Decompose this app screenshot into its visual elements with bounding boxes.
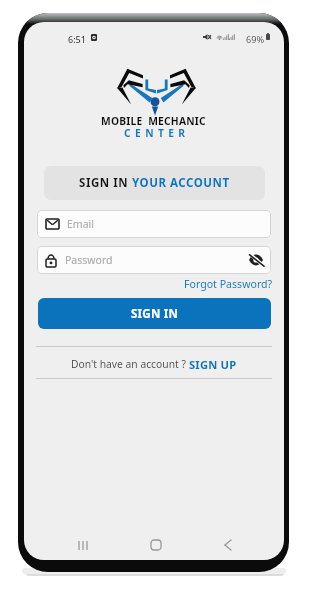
staticText: C E N T E R xyxy=(124,126,186,140)
staticText: Password xyxy=(65,253,113,267)
staticText: YOUR ACCOUNT xyxy=(132,175,230,191)
button[interactable]: Forgot Password? xyxy=(177,276,273,291)
staticText: SIGN IN xyxy=(79,175,132,191)
button[interactable]: Email xyxy=(37,210,271,238)
staticText: MOBILE MECHANIC xyxy=(101,114,206,128)
button[interactable]: Password xyxy=(37,246,271,274)
button[interactable]: Home xyxy=(142,532,170,558)
staticText: SIGN IN xyxy=(131,306,179,322)
button[interactable]: Back xyxy=(214,532,242,558)
staticText: Forgot Password? xyxy=(184,277,273,291)
staticText: 6:51 xyxy=(68,33,86,45)
staticText: SIGN UP xyxy=(189,357,237,372)
button[interactable]: SIGN IN xyxy=(38,298,271,329)
button[interactable]: Show password xyxy=(248,252,264,268)
staticText: Email xyxy=(67,217,94,231)
staticText: 69% xyxy=(246,33,265,46)
button[interactable]: SIGN IN xyxy=(44,166,265,200)
button[interactable]: SIGN UP xyxy=(189,357,237,372)
staticText: Don't have an account ? xyxy=(71,357,189,371)
button[interactable]: Recent apps xyxy=(69,532,97,558)
